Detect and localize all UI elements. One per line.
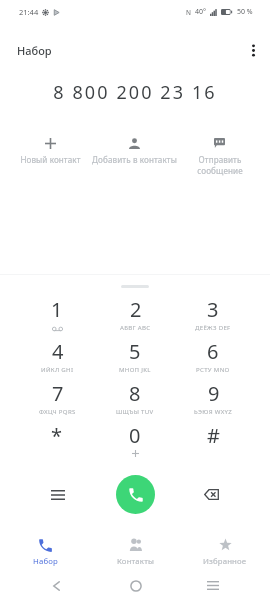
button[interactable]: Call [116, 475, 155, 514]
button[interactable]: 1 [18, 296, 96, 338]
staticText: 50 % [237, 7, 253, 17]
button[interactable]: Отправить сообщение [177, 136, 262, 176]
staticText: РСТУ MNO [196, 365, 230, 373]
button[interactable]: 3 [174, 296, 252, 338]
button[interactable]: Добавить в контакты [92, 136, 177, 165]
button[interactable]: 6 [174, 338, 252, 380]
staticText: 8 [129, 380, 141, 407]
staticText: Набор [33, 556, 58, 567]
button[interactable]: Избранное [180, 530, 270, 568]
staticText: 4 [52, 338, 64, 365]
button[interactable]: Контакты [90, 530, 180, 568]
staticText: МНОП JKL [119, 365, 151, 373]
staticText: * [51, 422, 63, 449]
button[interactable]: 0 [96, 422, 174, 464]
staticText: 7 [52, 380, 64, 407]
button[interactable]: Recent apps [201, 574, 224, 597]
button[interactable]: 4 [18, 338, 96, 380]
staticText: 5 [129, 338, 141, 365]
staticText: Набор [17, 43, 52, 58]
button[interactable]: More options [241, 38, 265, 62]
staticText: # [207, 422, 220, 449]
button[interactable]: 2 [96, 296, 174, 338]
button[interactable]: Набор [0, 530, 90, 568]
staticText: Избранное [203, 556, 247, 567]
staticText: Отправить сообщение [197, 154, 243, 176]
staticText: 2 [130, 296, 142, 323]
button[interactable]: 8 [96, 380, 174, 422]
button[interactable]: Call log [44, 481, 71, 508]
staticText: 3 [207, 296, 219, 323]
staticText: 9 [208, 380, 220, 407]
button[interactable]: Home [124, 574, 147, 597]
button[interactable]: Back [45, 574, 68, 597]
button[interactable]: 9 [174, 380, 252, 422]
staticText: Добавить в контакты [92, 154, 177, 165]
staticText: 0 [129, 422, 141, 449]
staticText: ЬЭЮЯ WXYZ [194, 407, 233, 415]
button[interactable]: Backspace [198, 481, 225, 508]
staticText: 8 800 200 23 16 [53, 80, 217, 105]
staticText: ИЙКЛ GHI [41, 365, 74, 373]
button[interactable]: 7 [18, 380, 96, 422]
button[interactable]: * [18, 422, 96, 464]
staticText: N [186, 8, 191, 17]
staticText: 1 [51, 296, 63, 323]
button[interactable]: 5 [96, 338, 174, 380]
staticText: 40° [195, 7, 207, 17]
staticText: ФХЦЧ PQRS [39, 407, 76, 415]
staticText: ДЕЁЖЗ DEF [195, 323, 231, 331]
button[interactable]: Новый контакт [8, 136, 92, 165]
button[interactable]: # [174, 422, 252, 464]
staticText: ШЩЪЫ TUV [116, 407, 154, 415]
staticText: 21:44 [19, 7, 39, 17]
staticText: 6 [207, 338, 219, 365]
staticText: Новый контакт [20, 154, 81, 165]
staticText: Контакты [117, 556, 154, 567]
staticText: АБВГ ABC [120, 323, 151, 331]
